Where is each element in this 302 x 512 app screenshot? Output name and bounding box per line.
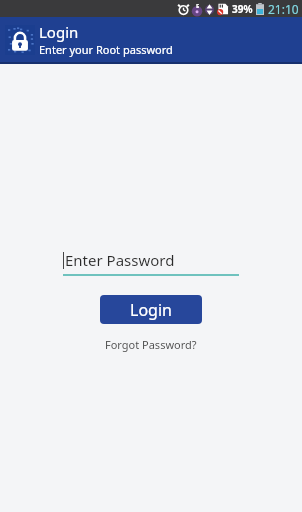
staticText: Enter your Root password: [39, 42, 173, 57]
button[interactable]: Login: [100, 295, 202, 324]
staticText: Login: [39, 22, 79, 42]
staticText: E: [196, 2, 200, 10]
button[interactable]: Forgot Password?: [105, 337, 197, 352]
staticText: Login: [130, 299, 172, 321]
staticText: 39%: [232, 2, 253, 16]
staticText: Forgot Password?: [105, 337, 197, 352]
button[interactable]: Enter Password: [63, 250, 239, 276]
staticText: Enter Password: [65, 250, 175, 270]
staticText: 21:10: [268, 1, 299, 17]
